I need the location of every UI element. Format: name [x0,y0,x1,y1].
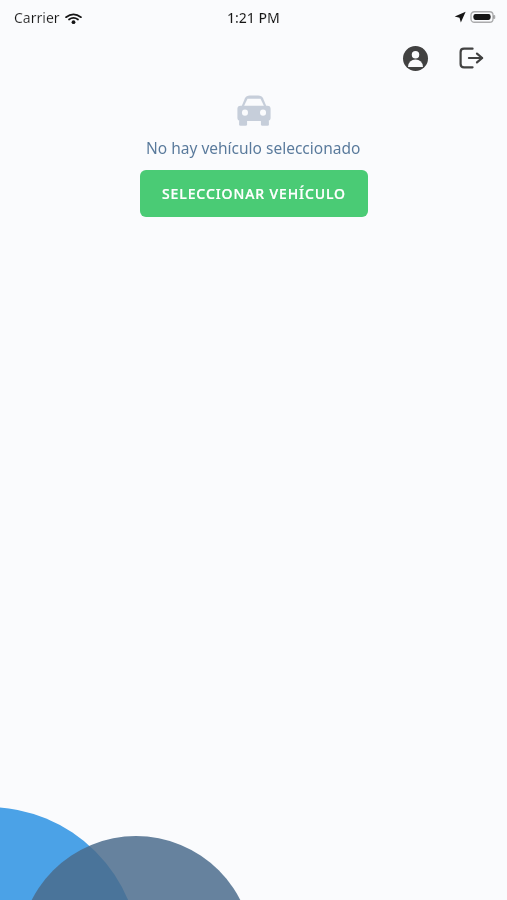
staticText: 1:21 PM [227,8,280,27]
staticText: No hay vehículo seleccionado [146,137,361,158]
button[interactable]: Log out [449,36,493,80]
button[interactable]: Account [393,36,437,80]
button[interactable]: SELECCIONAR VEHÍCULO [140,170,368,217]
staticText: Carrier [14,8,60,27]
staticText: SELECCIONAR VEHÍCULO [162,184,346,203]
